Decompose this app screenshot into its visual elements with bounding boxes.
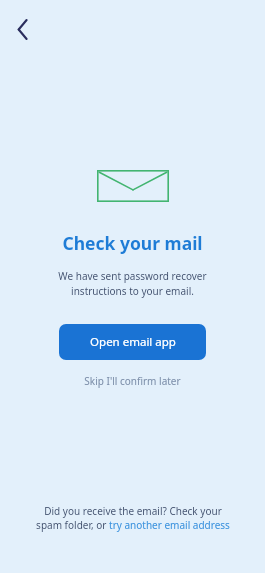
button[interactable]: Back bbox=[6, 12, 40, 46]
button[interactable]: Skip I'll confirm later bbox=[74, 369, 191, 393]
button[interactable]: Open email app bbox=[59, 324, 206, 360]
staticText: Open email app bbox=[90, 334, 176, 350]
button[interactable]: Did you receive the email? Check your sp… bbox=[36, 504, 230, 532]
staticText: Skip I'll confirm later bbox=[84, 374, 181, 388]
staticText: Did you receive the email? Check your sp… bbox=[36, 504, 230, 532]
staticText: We have sent password recover instructio… bbox=[58, 269, 207, 298]
staticText: Check your mail bbox=[62, 231, 203, 255]
